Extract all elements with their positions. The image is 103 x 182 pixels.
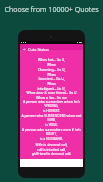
staticText: A person who surrenders even if he's bbox=[20, 127, 83, 132]
staticText: Charming... Its U, bbox=[20, 67, 83, 72]
staticText: Whos a liar... Its me bbox=[20, 95, 83, 100]
staticText: A person who SURRENDERS when not bbox=[20, 113, 83, 118]
staticText: is a HUSBAND. bbox=[20, 136, 83, 141]
staticText: Cute Status bbox=[28, 47, 49, 52]
staticText: intelligent... Its U, bbox=[20, 86, 83, 91]
button[interactable]: Back bbox=[18, 30, 85, 178]
staticText: call is intutled call, bbox=[20, 147, 83, 152]
staticText: WRONG, bbox=[20, 103, 83, 108]
staticText: Choose from 10000+ Quotes bbox=[0, 4, 103, 14]
staticText: girlfriend is demand call. bbox=[20, 151, 83, 156]
other: Back bbox=[23, 48, 26, 51]
staticText: Whos hot... Its U, bbox=[20, 57, 83, 62]
staticText: Sweetest... Its U, bbox=[20, 76, 83, 81]
staticText: RIGHT, bbox=[20, 131, 83, 136]
staticText: Whos bbox=[20, 72, 83, 77]
staticText: SURE, bbox=[20, 117, 83, 122]
staticText: Whos dear & near friend... Its U bbox=[20, 90, 83, 95]
staticText: Wife is sincered call, bbox=[20, 142, 83, 147]
staticText: is HONEST. bbox=[20, 108, 83, 113]
staticText: Whos bbox=[20, 62, 83, 67]
button[interactable]: Back bbox=[20, 44, 83, 52]
staticText: A person who surrenders when he's bbox=[20, 99, 83, 104]
staticText: Whos bbox=[20, 81, 83, 86]
staticText: is WISE. bbox=[20, 122, 83, 127]
button[interactable] bbox=[20, 44, 83, 50]
